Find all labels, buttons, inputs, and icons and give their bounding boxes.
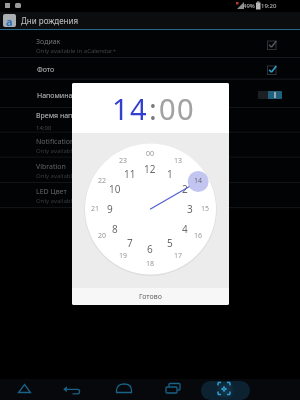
staticText: LED Цвет [36,187,67,197]
staticText: 10 [109,182,121,196]
staticText: 18 [146,259,155,269]
staticText: 4 [182,222,188,236]
staticText: Фото [37,65,55,75]
staticText: 8 [112,222,118,236]
staticText: Only available in aCalendar+ [36,147,116,155]
staticText: 17 [174,251,183,261]
button[interactable] [196,379,245,400]
staticText: 9 [107,202,113,216]
staticText: 14 [112,89,149,128]
staticText: 20 [98,231,107,241]
staticText: 16 [194,231,203,241]
staticText: 19:20 [261,2,277,10]
staticText: 22 [98,176,107,186]
staticText: 6 [147,242,153,256]
staticText: 1 [167,167,173,181]
staticText: 21 [91,204,100,214]
button[interactable] [49,379,98,400]
staticText: 14 [194,176,203,186]
staticText: Notifications [36,137,78,147]
staticText: Only available in aCalendar+ [36,172,116,180]
staticText: 7 [127,236,133,250]
button[interactable] [0,79,300,107]
button[interactable] [0,379,49,400]
staticText: 11 [124,167,136,181]
staticText: Дни рождения [21,15,79,26]
staticText: 5 [167,236,173,250]
staticText: 23 [119,156,128,166]
staticText: 15 [201,204,210,214]
staticText: 13 [174,156,183,166]
staticText: Vibration [36,162,66,172]
staticText: 12 [144,162,156,176]
staticText: Зодиак [36,37,61,47]
staticText: Only available in aCalendar+ [36,47,116,55]
staticText: 14:00 [36,124,52,132]
button[interactable] [0,30,300,58]
button[interactable] [0,58,300,79]
staticText: Готово [139,292,162,302]
staticText: : [149,89,159,128]
staticText: 3 [187,202,193,216]
staticText: 49% [243,2,255,10]
staticText: a [6,14,13,27]
button[interactable]: Готово [72,288,229,305]
button[interactable] [98,379,147,400]
button[interactable] [147,379,196,400]
staticText: 00 [146,149,155,159]
staticText: Время напоминания [36,111,108,121]
staticText: 00 [159,89,196,128]
staticText: Напоминание [37,91,85,101]
staticText: 2 [182,182,188,196]
staticText: 19 [119,251,128,261]
staticText: Only available in aCalendar+ [36,197,116,205]
